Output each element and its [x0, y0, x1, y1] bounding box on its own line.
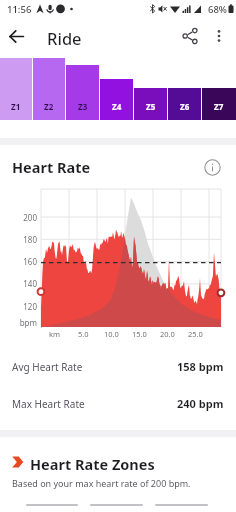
staticText: Heart Rate — [12, 157, 91, 177]
staticText: 20.0 — [160, 329, 175, 339]
staticText: 15.0 — [132, 329, 147, 339]
staticText: 5.0 — [78, 329, 89, 339]
button[interactable]: Z6 — [168, 58, 202, 120]
button[interactable]: Z3 — [66, 58, 100, 120]
staticText: Z2 — [44, 101, 54, 112]
staticText: 11:56 — [7, 3, 32, 16]
staticText: 10.0 — [104, 329, 119, 339]
staticText: Ride — [47, 27, 82, 49]
staticText: bpm — [0, 317, 37, 328]
button[interactable]: Max Heart Rate — [0, 393, 236, 414]
button[interactable]: Z1 — [0, 58, 33, 120]
button[interactable]: More options — [205, 22, 233, 50]
staticText: Z7 — [214, 101, 224, 112]
staticText: Z1 — [11, 101, 21, 112]
button[interactable]: Z4 — [100, 58, 134, 120]
button[interactable]: Back — [2, 22, 30, 50]
button[interactable]: Z5 — [134, 58, 168, 120]
staticText: km — [49, 329, 61, 339]
staticText: 158 bpm — [177, 359, 224, 374]
staticText: 160 — [0, 256, 37, 267]
staticText: 120 — [0, 301, 37, 312]
staticText: Avg Heart Rate — [12, 360, 83, 374]
button[interactable]: Share — [176, 22, 204, 50]
button[interactable]: Info — [201, 156, 223, 178]
staticText: Based on your max heart rate of 200 bpm. — [12, 477, 191, 489]
staticText: Z4 — [112, 101, 122, 112]
staticText: Z5 — [146, 101, 156, 112]
staticText: 180 — [0, 234, 37, 245]
staticText: Z6 — [180, 101, 190, 112]
staticText: Heart Rate Zones — [30, 454, 155, 474]
staticText: 240 bpm — [177, 396, 224, 411]
staticText: 140 — [0, 278, 37, 289]
button[interactable]: Avg Heart Rate — [0, 356, 236, 377]
staticText: Max Heart Rate — [12, 397, 85, 411]
button[interactable]: Z2 — [33, 58, 66, 120]
staticText: 68% — [208, 3, 227, 16]
staticText: 200 — [0, 212, 37, 223]
staticText: 25.0 — [188, 329, 203, 339]
staticText: Z3 — [78, 101, 88, 112]
button[interactable]: Z7 — [202, 58, 236, 120]
